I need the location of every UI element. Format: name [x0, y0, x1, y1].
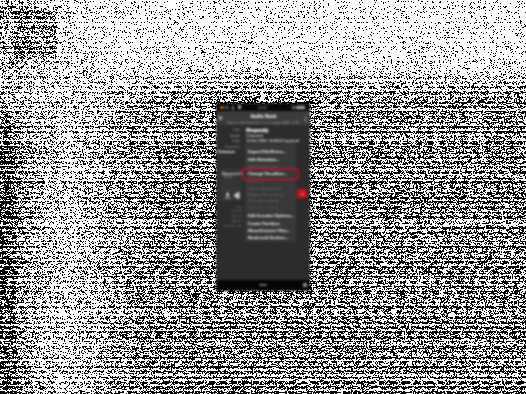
- button[interactable]: Track card: [220, 168, 242, 201]
- button[interactable]: Edit Metadata…: [245, 155, 296, 162]
- button[interactable]: Rename: [245, 177, 296, 184]
- staticText: Bitrate: [232, 213, 243, 218]
- button[interactable]: Move/Convert Files…: [245, 226, 296, 233]
- staticText: Check Waveform: [248, 185, 283, 191]
- button[interactable]: More options: [301, 114, 310, 123]
- button[interactable]: Change Visualiser…: [245, 169, 296, 176]
- staticText: 02:14: [224, 175, 233, 179]
- staticText: Enhance: [218, 149, 236, 155]
- staticText: 14:08: [257, 105, 267, 110]
- button[interactable]: Recents: [303, 283, 307, 287]
- button[interactable]: Create Partition Image…: [245, 219, 296, 226]
- button[interactable]: Add Bookmark: [245, 162, 296, 169]
- button[interactable]: Record: [297, 189, 307, 198]
- button[interactable]: Navigate up: [216, 113, 226, 123]
- button[interactable]: Export File/Share…: [245, 147, 296, 154]
- staticText: Move/Convert Files…: [248, 227, 290, 233]
- staticText: Bookmark Section…: [248, 234, 289, 240]
- staticText: Movement I: [222, 171, 242, 176]
- staticText: Rename: [248, 178, 265, 184]
- staticText: Duration: [225, 144, 240, 149]
- staticText: Add Bookmark: [248, 163, 278, 169]
- staticText: Audio Channels: [216, 133, 240, 138]
- staticText: Format: [231, 208, 243, 213]
- staticText: Edit Metadata…: [248, 156, 280, 162]
- staticText: Date: [232, 138, 240, 143]
- staticText: Rhapsody: [246, 127, 269, 133]
- staticText: 12 Oct 2023 14:08:22 (system): [246, 138, 300, 143]
- button[interactable]: Check Waveform: [245, 184, 296, 191]
- staticText: Audio Book: [250, 113, 277, 119]
- staticText: Edit Encoder Options…: [248, 212, 294, 218]
- staticText: Change Visualiser…: [248, 170, 287, 176]
- staticText: Create Partition Image…: [248, 220, 296, 226]
- staticText: Sample rate: [223, 223, 243, 228]
- button[interactable]: Trim Recording: [245, 196, 296, 203]
- staticText: Trim Recording: [248, 197, 279, 203]
- staticText: Title: [232, 127, 240, 132]
- button[interactable]: Repair Recording…: [245, 190, 296, 197]
- button[interactable]: Bookmark Section…: [245, 233, 296, 240]
- staticText: Bach Cello Suite No 1 in G major BWV 100…: [227, 120, 300, 125]
- staticText: Album: [232, 218, 243, 223]
- staticText: 2 (stereo): [246, 133, 263, 138]
- button[interactable]: Edit Encoder Options…: [245, 211, 296, 218]
- staticText: Repair Recording…: [248, 191, 287, 197]
- button[interactable]: Home: [259, 284, 267, 286]
- staticText: Export File/Share…: [248, 148, 286, 154]
- staticText: Size: [236, 204, 243, 209]
